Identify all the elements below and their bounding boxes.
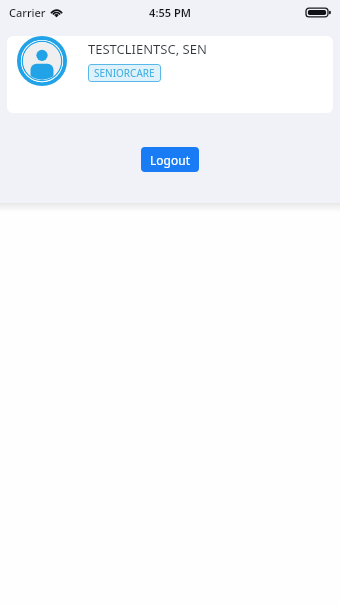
button[interactable]: SENIORCARE [88, 64, 161, 82]
button[interactable]: TESTCLIENTSC, SEN [7, 36, 333, 113]
staticText: Carrier [9, 5, 46, 20]
button[interactable]: Logout [141, 147, 199, 172]
staticText: 4:55 PM [149, 5, 191, 20]
staticText: TESTCLIENTSC, SEN [88, 40, 207, 58]
staticText: SENIORCARE [94, 66, 155, 80]
staticText: Logout [150, 152, 190, 168]
